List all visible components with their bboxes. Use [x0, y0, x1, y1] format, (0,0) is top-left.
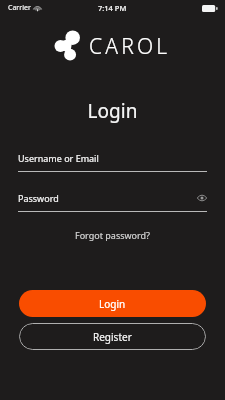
button[interactable]: Forgot password?	[0, 224, 225, 246]
staticText: Carrier	[8, 3, 31, 13]
staticText: 7:14 PM	[98, 3, 127, 13]
other: Show password	[197, 193, 207, 203]
staticText: Password	[18, 192, 59, 204]
staticText: CAROL	[89, 32, 171, 61]
button[interactable]: Password	[18, 192, 207, 212]
staticText: Login	[99, 297, 126, 311]
staticText: Login	[0, 98, 225, 124]
staticText: Register	[93, 330, 132, 344]
button[interactable]: Register	[19, 323, 206, 350]
button[interactable]: Login	[19, 290, 206, 317]
button[interactable]: Username or Email	[18, 152, 207, 172]
staticText: Forgot password?	[75, 229, 151, 241]
staticText: Username or Email	[18, 152, 99, 164]
